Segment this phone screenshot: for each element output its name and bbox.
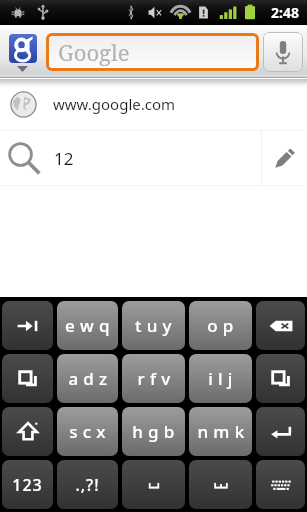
staticText: 2:48 (271, 3, 299, 22)
button[interactable]: e w q (57, 301, 118, 350)
button[interactable]: Shift (2, 407, 53, 456)
staticText: a d z (68, 367, 108, 390)
button[interactable]: Backspace (256, 301, 305, 350)
button[interactable]: .,?! (57, 460, 118, 509)
staticText: h g b (132, 420, 175, 443)
button[interactable]: Hide keyboard (256, 460, 305, 509)
staticText: t u y (135, 314, 172, 337)
button[interactable]: Enter (256, 407, 305, 456)
staticText: www.google.com (53, 94, 176, 114)
button[interactable]: Edit query (262, 131, 307, 185)
button[interactable]: 123 (2, 460, 53, 509)
button[interactable]: Switch input method (2, 354, 53, 403)
button[interactable]: Search engine Google (9, 34, 37, 63)
button[interactable]: Tab (2, 301, 53, 350)
button[interactable]: 12 (0, 131, 261, 185)
staticText: Google (58, 37, 130, 67)
button[interactable]: i l j (189, 354, 252, 403)
button[interactable]: r f v (122, 354, 185, 403)
button[interactable]: Switch input method (256, 354, 305, 403)
button[interactable]: h g b (122, 407, 185, 456)
button[interactable]: o p (189, 301, 252, 350)
button[interactable]: t u y (122, 301, 185, 350)
staticText: i l j (208, 367, 233, 390)
button[interactable]: n m k (189, 407, 252, 456)
staticText: o p (207, 314, 234, 337)
button[interactable]: Space (122, 460, 185, 509)
staticText: r f v (137, 367, 171, 390)
button[interactable]: Voice search (263, 32, 303, 72)
button[interactable]: a d z (57, 354, 118, 403)
staticText: s c x (69, 420, 106, 443)
staticText: 12 (54, 147, 74, 170)
button[interactable]: Space (189, 460, 252, 509)
button[interactable]: Google (49, 36, 256, 68)
staticText: e w q (65, 314, 110, 337)
staticText: n m k (197, 420, 245, 443)
button[interactable]: www.google.com (0, 78, 307, 130)
button[interactable]: s c x (57, 407, 118, 456)
staticText: .,?! (75, 474, 100, 496)
staticText: 123 (12, 474, 43, 496)
